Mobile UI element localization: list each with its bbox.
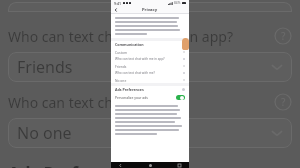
staticText: 84% bbox=[174, 1, 181, 5]
button[interactable]: Help bbox=[274, 93, 292, 111]
staticText: Who can text chat with me? bbox=[115, 71, 183, 75]
staticText: Friends bbox=[115, 64, 183, 68]
button[interactable]: Ads Preferences bbox=[115, 86, 185, 93]
button[interactable]: Custom bbox=[115, 48, 185, 55]
button[interactable]: Home bbox=[149, 164, 152, 167]
button[interactable]: Personalize your ads toggle bbox=[176, 95, 185, 100]
button[interactable]: Back bbox=[113, 7, 119, 13]
button[interactable]: Back bbox=[119, 164, 122, 167]
button[interactable]: Friends bbox=[115, 62, 185, 69]
staticText: Who can text chat with me in app? bbox=[8, 27, 274, 46]
button[interactable]: Who can text chat with me? bbox=[0, 92, 300, 112]
staticText: Who can text chat with me? bbox=[8, 93, 274, 112]
staticText: ? bbox=[281, 95, 286, 109]
staticText: Ads Preferences bbox=[8, 162, 145, 168]
button[interactable]: Personalize your ads bbox=[115, 93, 185, 102]
staticText: Personalize your ads bbox=[115, 95, 176, 100]
button[interactable]: Who can text chat with me in app? bbox=[0, 26, 300, 46]
staticText: ? bbox=[281, 29, 286, 43]
staticText: Friends bbox=[17, 56, 271, 78]
staticText: No one bbox=[115, 78, 183, 82]
staticText: Privacy bbox=[142, 7, 158, 13]
button[interactable]: Communication bbox=[115, 41, 185, 48]
button[interactable]: Help bbox=[274, 27, 292, 45]
staticText: Who can text chat with me in app? bbox=[115, 57, 183, 61]
staticText: Ads Preferences bbox=[115, 87, 182, 92]
staticText: 9:41 bbox=[114, 1, 121, 6]
button[interactable]: Friends bbox=[8, 52, 292, 82]
button[interactable]: No one bbox=[8, 118, 292, 148]
staticText: Custom bbox=[115, 50, 183, 54]
button[interactable]: Recents bbox=[178, 164, 181, 167]
staticText: No one bbox=[17, 122, 271, 144]
button[interactable]: No one bbox=[115, 76, 185, 83]
staticText: Communication bbox=[115, 42, 182, 47]
